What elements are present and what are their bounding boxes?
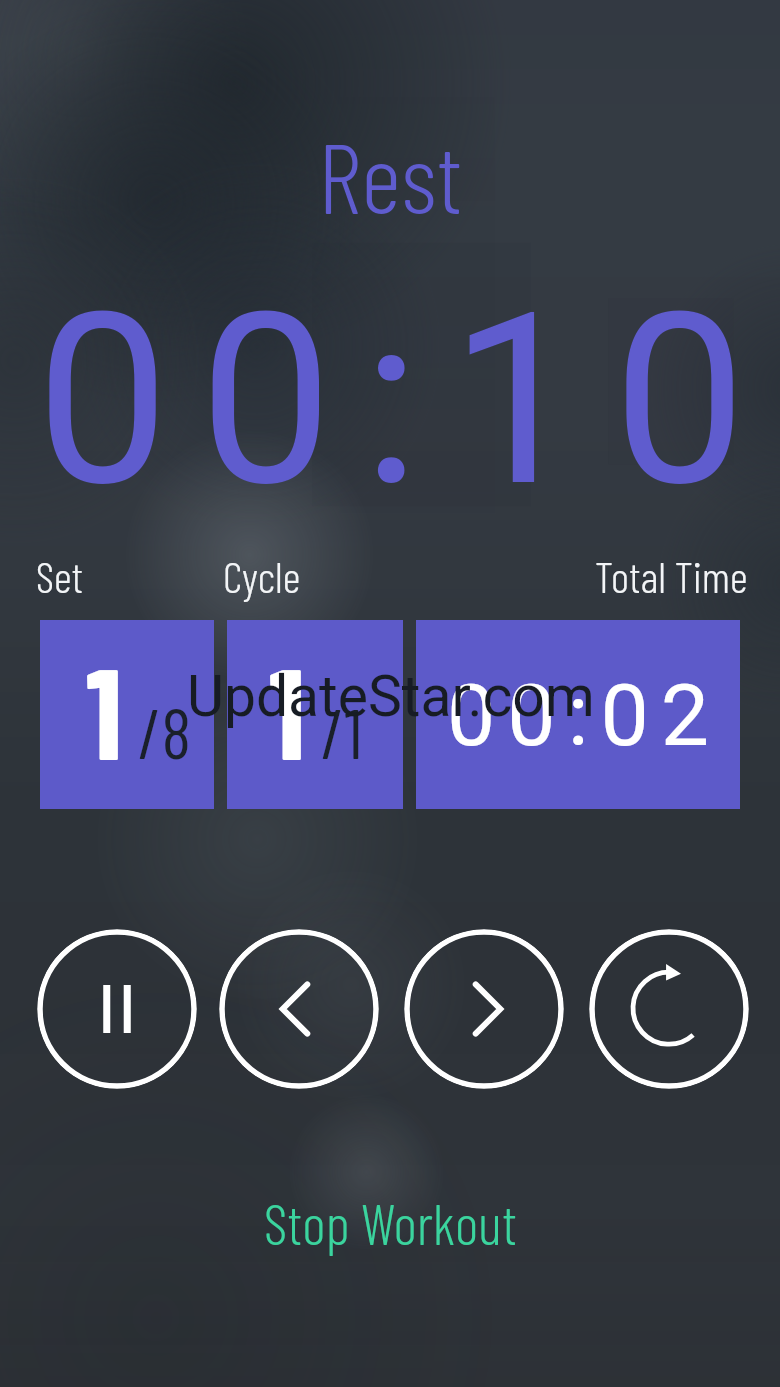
button[interactable]: Stop Workout	[240, 1178, 541, 1266]
staticText: Total Time	[595, 549, 748, 602]
button[interactable]: Previous set	[219, 929, 379, 1089]
button[interactable]: Next set	[404, 929, 564, 1089]
staticText: UpdateStar.com	[187, 663, 595, 730]
staticText: Stop Workout	[264, 1188, 517, 1256]
staticText: 1	[86, 632, 123, 786]
button[interactable]: Pause	[37, 929, 197, 1089]
button[interactable]: 1	[40, 620, 214, 809]
staticText: Rest	[318, 115, 463, 234]
staticText: Cycle	[223, 549, 301, 602]
staticText: Set	[36, 549, 83, 602]
button[interactable]: 00:02	[416, 620, 740, 809]
staticText: 00:10	[36, 262, 777, 540]
button[interactable]: Restart	[589, 929, 749, 1089]
staticText: 1	[269, 632, 306, 786]
staticText: /8	[138, 689, 191, 773]
button[interactable]: 1	[227, 620, 403, 809]
staticText: 00:02	[447, 665, 722, 766]
staticText: /1	[321, 689, 363, 773]
